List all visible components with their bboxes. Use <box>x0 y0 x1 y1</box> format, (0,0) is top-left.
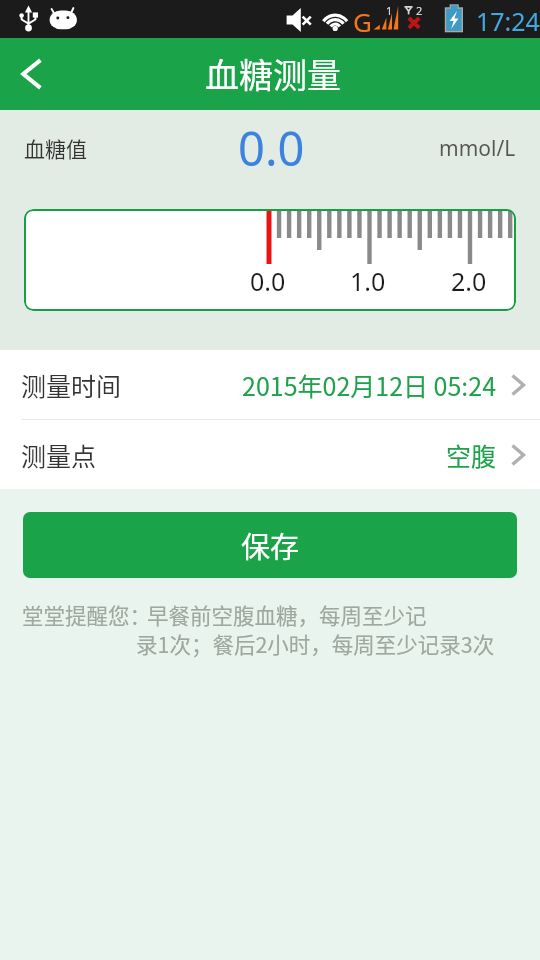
staticText: 堂堂提醒您： <box>22 599 152 630</box>
staticText: 录1次；餐后2小时，每周至少记录3次 <box>136 628 495 659</box>
staticText: 0.0 <box>250 264 286 298</box>
staticText: 测量点 <box>21 437 97 473</box>
staticText: 1.0 <box>350 264 386 298</box>
staticText: 早餐前空腹血糖，每周至少记 <box>147 599 427 630</box>
staticText: 空腹 <box>446 437 497 473</box>
button[interactable]: 测量点 <box>0 420 540 489</box>
staticText: 测量时间 <box>21 367 122 403</box>
staticText: 0.0 <box>238 116 305 180</box>
staticText: 2015年02月12日 05:24 <box>242 367 497 403</box>
staticText: 2.0 <box>451 264 487 298</box>
staticText: 17:24 <box>476 4 540 38</box>
staticText: 1 <box>386 3 393 18</box>
staticText: 2 <box>416 3 423 18</box>
button[interactable]: 保存 <box>23 512 517 578</box>
staticText: mmol/L <box>439 134 516 163</box>
button[interactable]: Back <box>0 38 63 110</box>
button[interactable]: 测量时间 <box>0 350 540 419</box>
staticText: 血糖测量 <box>205 49 341 98</box>
staticText: 血糖值 <box>24 133 87 163</box>
staticText: G <box>353 4 372 39</box>
staticText: 保存 <box>241 524 300 566</box>
